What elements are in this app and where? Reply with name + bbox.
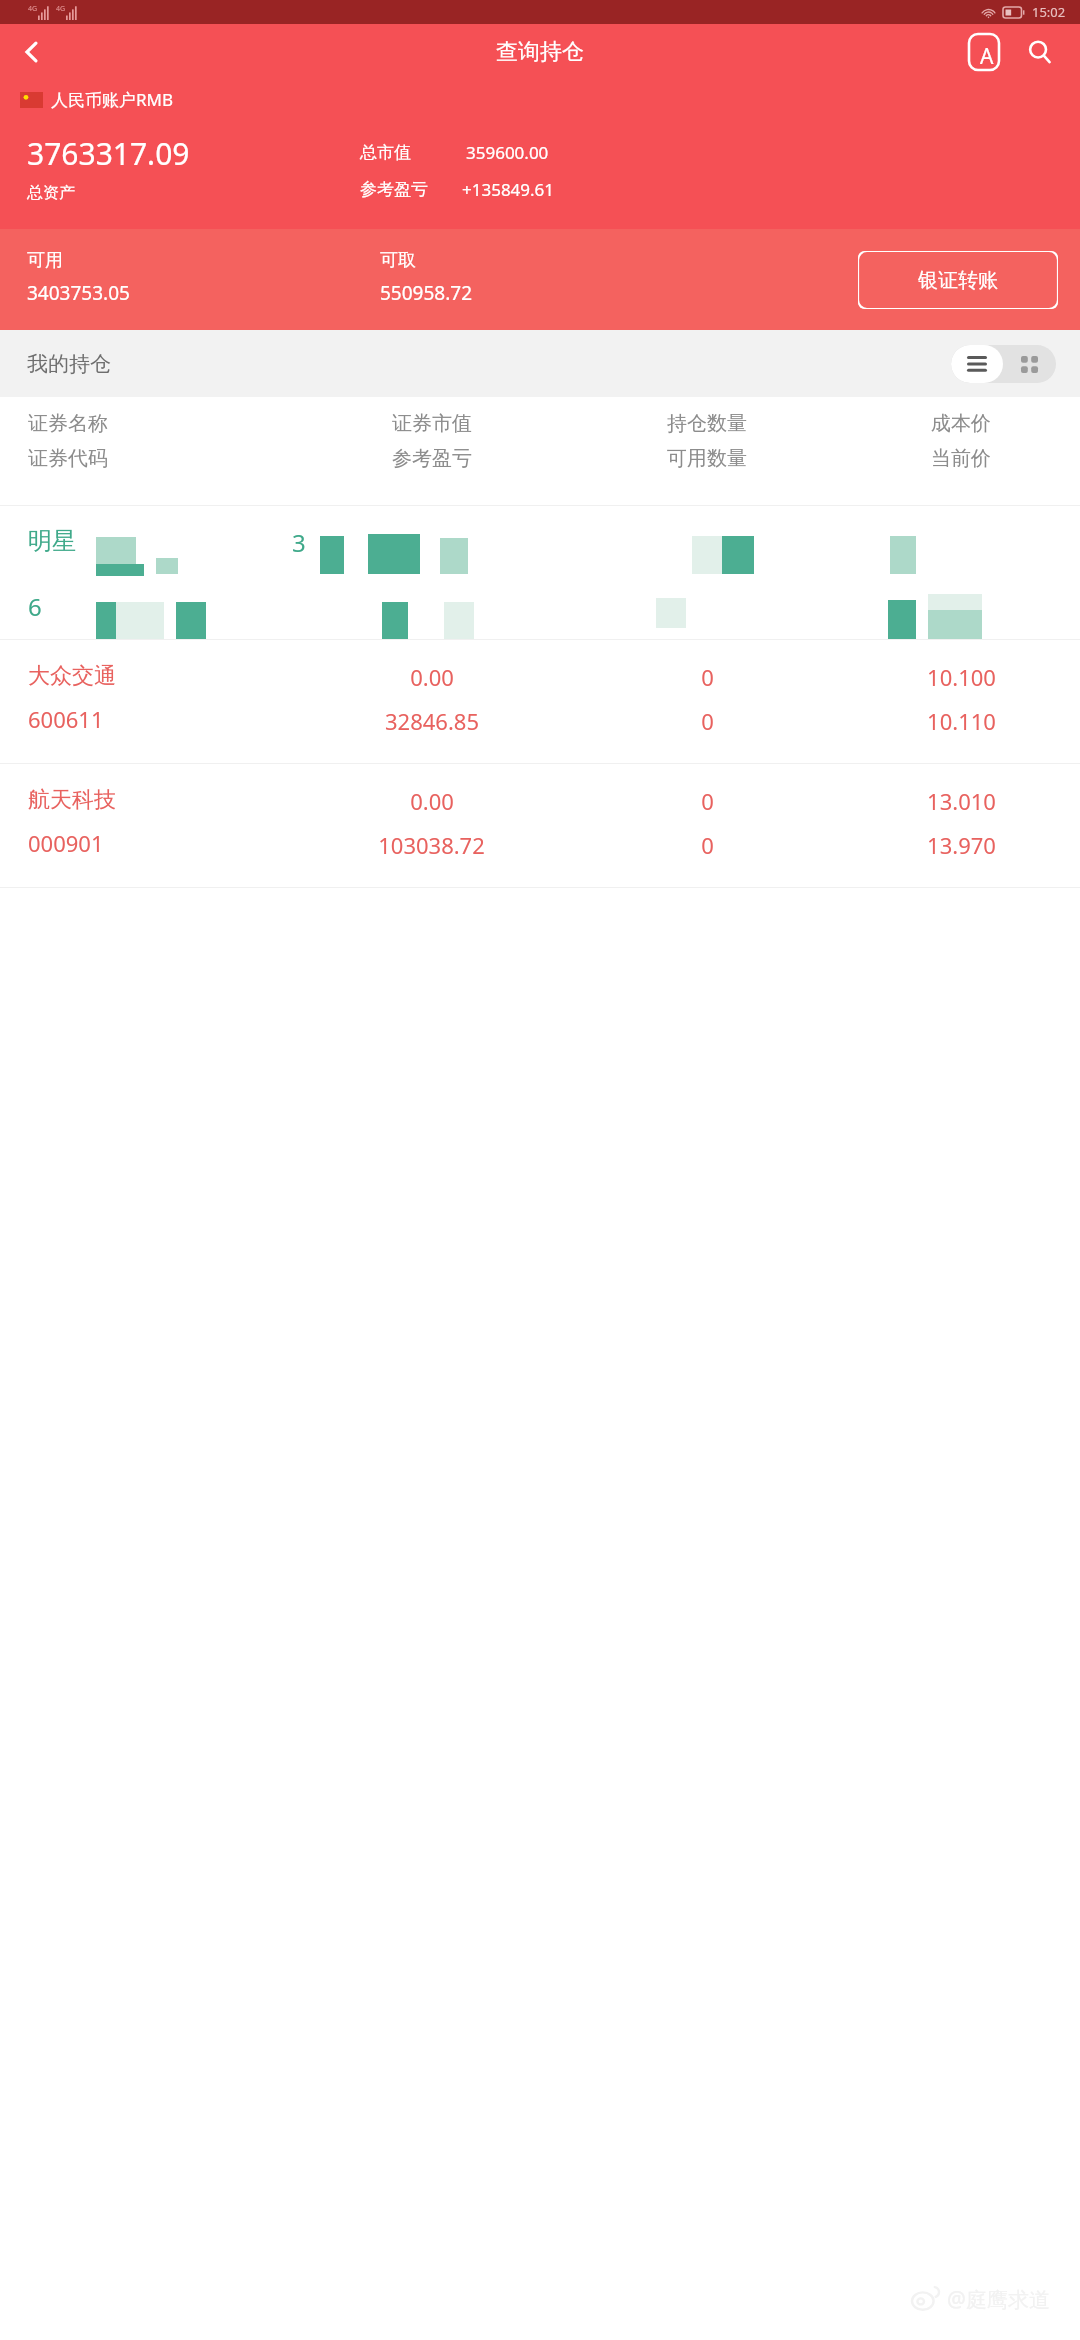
staticText: 总资产 bbox=[27, 183, 75, 203]
staticText: 证券代码 bbox=[28, 446, 108, 471]
staticText: 0 bbox=[701, 830, 714, 860]
staticText: 人民币账户RMB bbox=[51, 88, 174, 111]
staticText: 证券市值 bbox=[392, 411, 472, 436]
staticText: 可取 bbox=[380, 249, 416, 272]
staticText: 600611 bbox=[28, 704, 104, 734]
button[interactable]: 返回 bbox=[8, 28, 56, 76]
staticText: 可用数量 bbox=[667, 446, 747, 471]
staticText: 银证转账 bbox=[918, 268, 998, 293]
staticText: 航天科技 bbox=[28, 786, 116, 814]
staticText: 32846.85 bbox=[385, 706, 479, 736]
staticText: 10.100 bbox=[927, 662, 996, 692]
staticText: A bbox=[980, 42, 994, 70]
staticText: @庭鹰求道 bbox=[947, 2285, 1050, 2314]
staticText: 我的持仓 bbox=[27, 351, 111, 377]
staticText: 0 bbox=[701, 662, 714, 692]
staticText: 6 bbox=[28, 590, 42, 623]
staticText: 持仓数量 bbox=[667, 411, 747, 436]
button[interactable]: 明星 bbox=[0, 506, 1080, 639]
staticText: +135849.61 bbox=[462, 178, 555, 201]
staticText: 13.970 bbox=[927, 830, 996, 860]
staticText: 550958.72 bbox=[380, 280, 473, 306]
button[interactable]: 搜索 bbox=[1018, 30, 1062, 74]
staticText: 0 bbox=[701, 706, 714, 736]
button[interactable]: 列表视图 bbox=[951, 345, 1003, 383]
staticText: 4G bbox=[28, 4, 38, 14]
staticText: 15:02 bbox=[1032, 3, 1066, 21]
button[interactable]: 网格视图 bbox=[1003, 345, 1056, 383]
staticText: 3 bbox=[292, 526, 306, 559]
staticText: 13.010 bbox=[927, 786, 996, 816]
staticText: 参考盈亏 bbox=[392, 446, 472, 471]
staticText: 证券名称 bbox=[28, 411, 108, 436]
staticText: 总市值 bbox=[360, 142, 411, 163]
staticText: 当前价 bbox=[931, 446, 991, 471]
staticText: 0.00 bbox=[410, 786, 454, 816]
button[interactable]: 银证转账 bbox=[858, 251, 1058, 309]
staticText: 103038.72 bbox=[378, 830, 485, 860]
staticText: 3403753.05 bbox=[27, 280, 130, 306]
staticText: 10.110 bbox=[927, 706, 996, 736]
staticText: 3763317.09 bbox=[27, 133, 190, 174]
staticText: 参考盈亏 bbox=[360, 179, 428, 200]
button[interactable]: 字体大小 bbox=[962, 30, 1006, 74]
staticText: 成本价 bbox=[931, 411, 991, 436]
staticText: 明星 bbox=[28, 526, 76, 556]
staticText: 查询持仓 bbox=[496, 38, 584, 66]
staticText: 359600.00 bbox=[466, 141, 549, 164]
staticText: 0.00 bbox=[410, 662, 454, 692]
staticText: 可用 bbox=[27, 249, 63, 272]
staticText: 4G bbox=[56, 4, 66, 14]
staticText: 大众交通 bbox=[28, 662, 116, 690]
staticText: 000901 bbox=[28, 828, 104, 858]
staticText: 0 bbox=[701, 786, 714, 816]
